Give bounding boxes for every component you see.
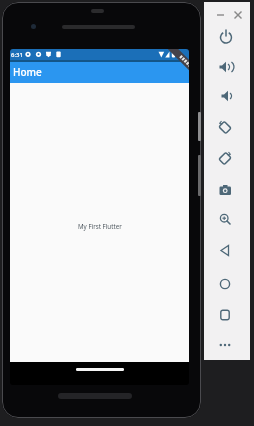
button[interactable] <box>216 10 226 20</box>
button[interactable] <box>218 338 234 354</box>
staticText: My First Flutter <box>78 222 122 230</box>
button[interactable] <box>218 29 234 45</box>
button[interactable] <box>233 10 243 20</box>
button[interactable]: Home <box>10 60 189 83</box>
button[interactable] <box>218 89 234 105</box>
button[interactable] <box>218 243 234 259</box>
button[interactable] <box>218 151 234 167</box>
button[interactable] <box>218 212 234 228</box>
button[interactable] <box>218 60 234 76</box>
button[interactable] <box>218 277 234 293</box>
staticText: Home <box>13 65 42 79</box>
button[interactable] <box>76 368 124 371</box>
button[interactable] <box>218 120 234 136</box>
button[interactable] <box>218 183 234 199</box>
button[interactable] <box>218 308 234 324</box>
staticText: 6:31 <box>11 51 23 59</box>
